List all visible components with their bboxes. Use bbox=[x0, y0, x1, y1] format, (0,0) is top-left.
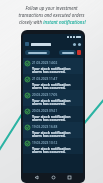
button[interactable]: Home bbox=[50, 174, 57, 181]
staticText: instant notifications! bbox=[43, 19, 86, 25]
staticText: 20.03.2023 17:05 bbox=[32, 93, 58, 97]
staticText: Your stock notification alarm has occurr… bbox=[32, 66, 81, 74]
button[interactable]: 19.03.2023 10:12 bbox=[25, 138, 81, 154]
staticText: 21.03.2023 14:02 bbox=[32, 61, 58, 65]
staticText: Follow up your investment bbox=[25, 5, 78, 11]
staticText: 19.03.2023 10:12 bbox=[32, 141, 58, 145]
button[interactable] bbox=[25, 50, 50, 55]
button[interactable]: 19.03.2023 16:38 bbox=[25, 122, 81, 138]
staticText: 19.03.2023 16:38 bbox=[32, 125, 58, 129]
button[interactable]: Action bbox=[78, 43, 81, 46]
button[interactable]: 20.03.2023 09:21 bbox=[25, 106, 81, 122]
button[interactable]: Action bbox=[73, 43, 76, 46]
staticText: closely with bbox=[18, 19, 43, 25]
staticText: transactions and executed orders bbox=[18, 12, 85, 18]
staticText: Your stock notification alarm has occurr… bbox=[32, 130, 81, 138]
staticText: 20.03.2023 09:21 bbox=[32, 109, 58, 113]
staticText: Your stock notification alarm has occurr… bbox=[32, 146, 81, 154]
button[interactable]: Clear bbox=[77, 50, 81, 55]
staticText: Your stock notification alarm has occurr… bbox=[32, 114, 81, 122]
button[interactable]: 20.03.2023 17:05 bbox=[25, 90, 81, 106]
button[interactable]: Recents bbox=[66, 174, 73, 181]
button[interactable]: Menu bbox=[25, 42, 29, 46]
button[interactable] bbox=[59, 50, 76, 55]
button[interactable]: Back bbox=[33, 174, 40, 181]
staticText: Your stock notification alarm has occurr… bbox=[32, 98, 81, 106]
button[interactable]: 21.03.2023 11:47 bbox=[25, 74, 81, 90]
staticText: 21.03.2023 11:47 bbox=[32, 77, 58, 81]
button[interactable]: 21.03.2023 14:02 bbox=[25, 58, 81, 74]
staticText: Your stock notification alarm has occurr… bbox=[32, 82, 81, 90]
